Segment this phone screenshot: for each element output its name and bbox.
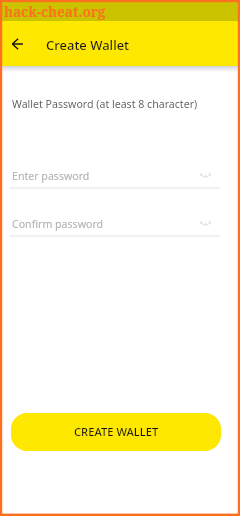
button[interactable]: Back — [5, 32, 29, 56]
staticText: CREATE WALLET — [74, 424, 159, 439]
button[interactable]: Toggle password visibility — [196, 212, 214, 230]
staticText: Confirm password — [12, 217, 104, 231]
staticText: Enter password — [12, 169, 90, 183]
button[interactable]: CREATE WALLET — [11, 413, 221, 451]
staticText: hack-cheat.org — [4, 3, 106, 21]
staticText: Wallet Password (at least 8 character) — [12, 97, 198, 111]
button[interactable]: Toggle password visibility — [196, 164, 214, 182]
staticText: Create Wallet — [46, 36, 130, 54]
